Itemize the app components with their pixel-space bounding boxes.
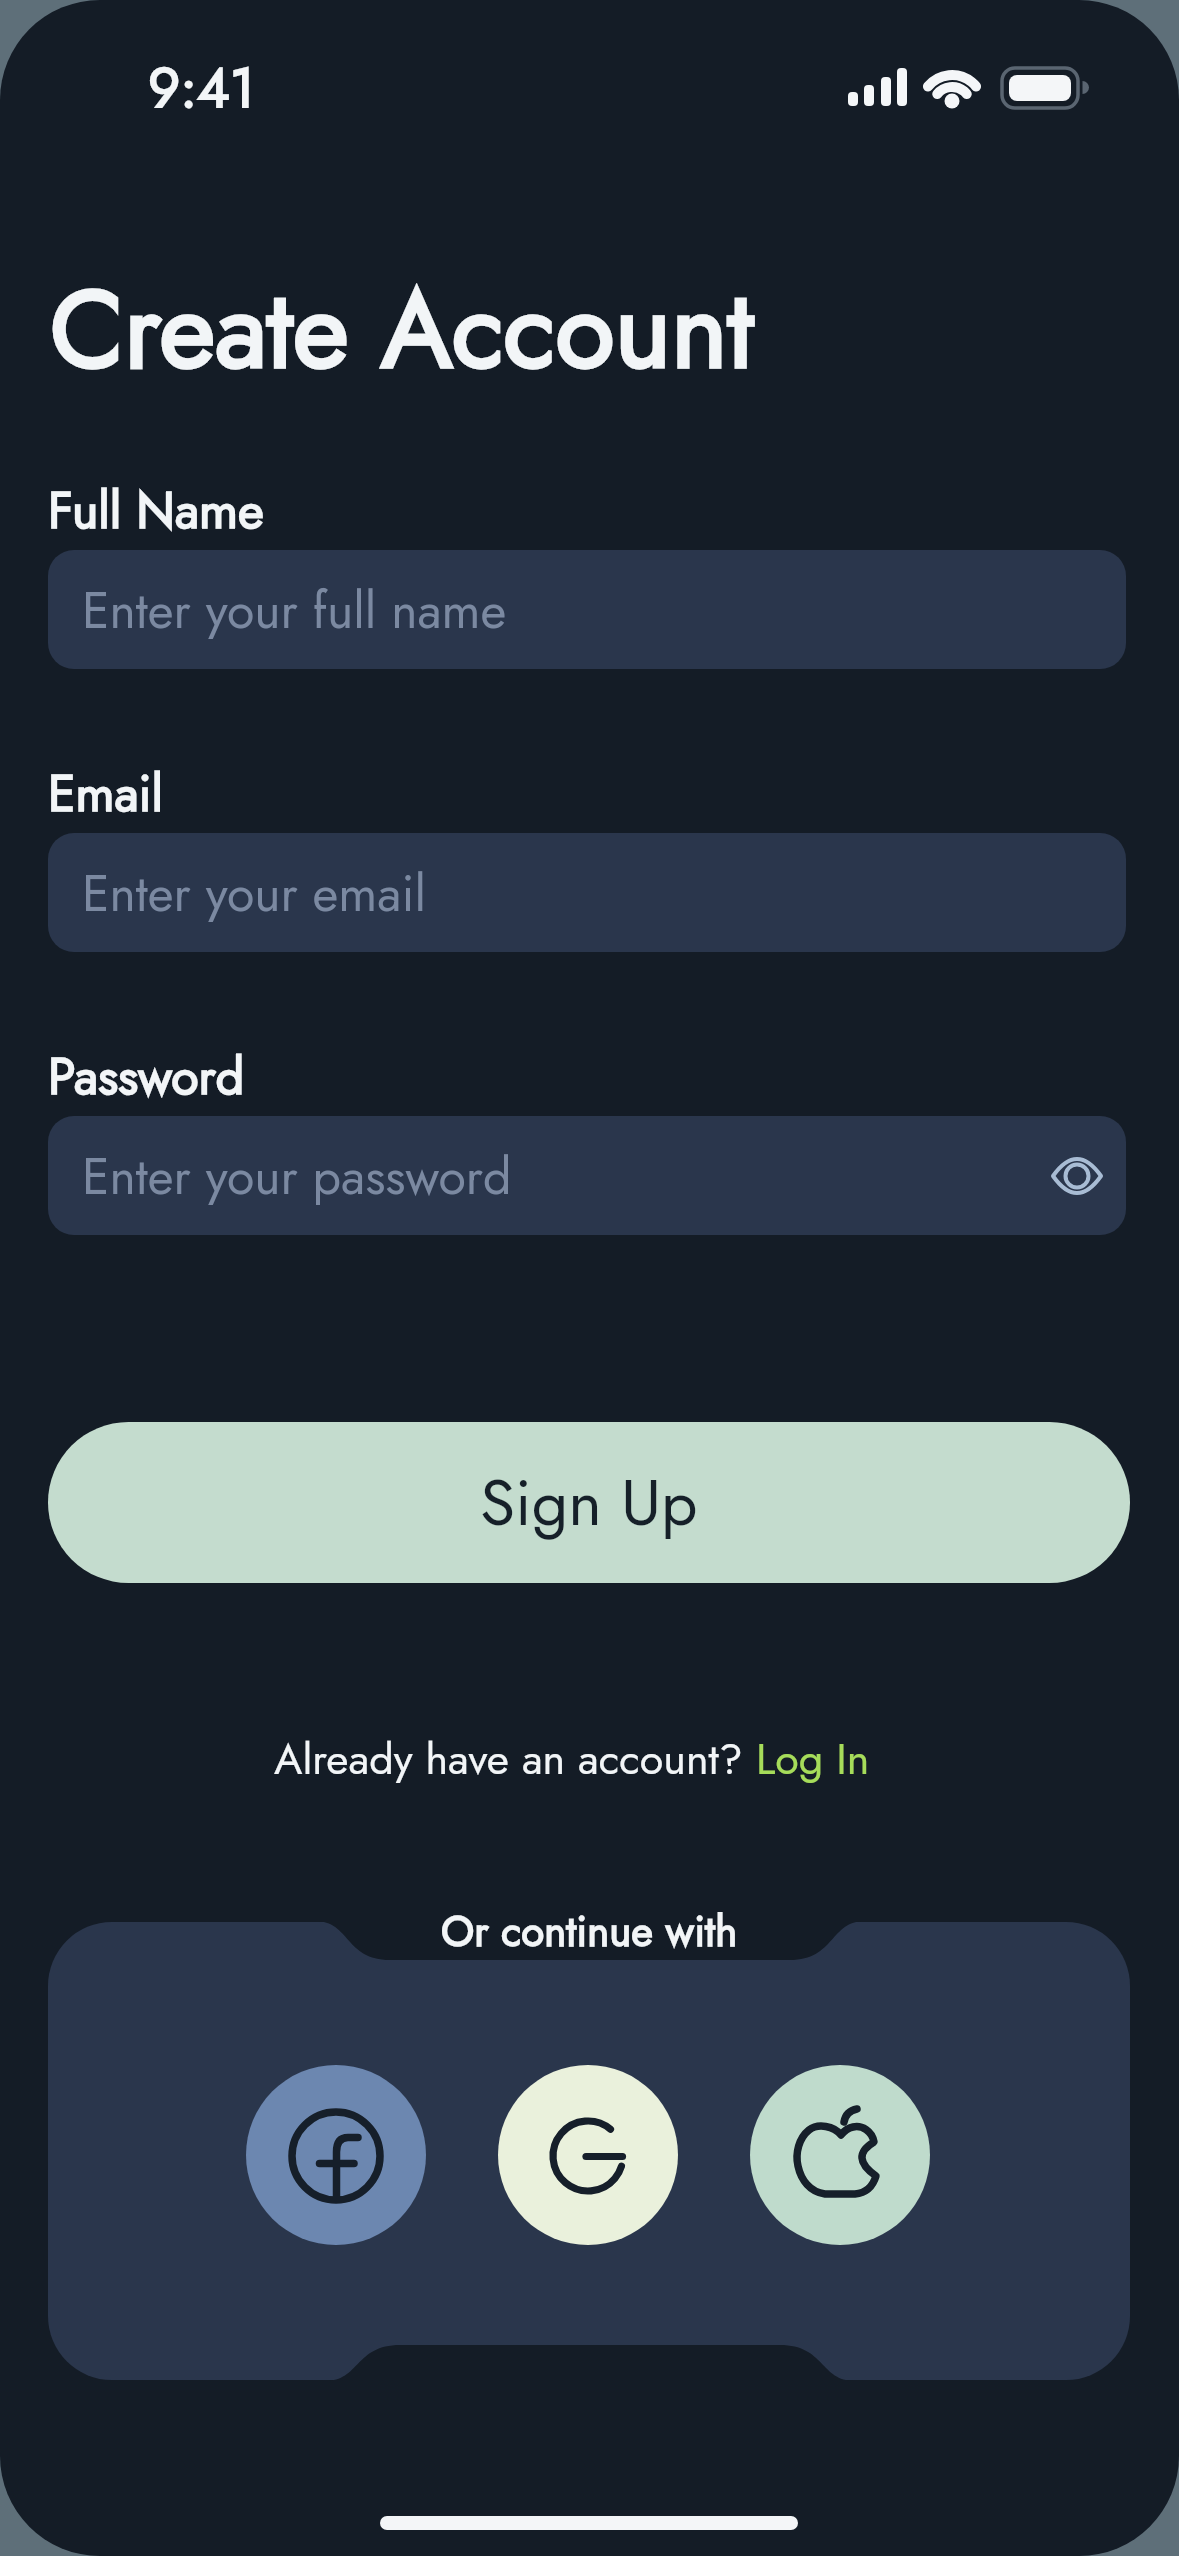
staticText: Sign Up xyxy=(480,1457,698,1549)
staticText: Already have an account? xyxy=(274,1728,756,1790)
staticText: Enter your email xyxy=(82,857,426,929)
button[interactable]: Enter your password xyxy=(48,1116,1126,1235)
staticText: Create Account xyxy=(50,251,754,407)
staticText: 9:41 xyxy=(148,47,255,128)
button[interactable]: Sign Up xyxy=(48,1422,1130,1583)
button[interactable] xyxy=(750,2065,930,2245)
button[interactable]: Enter your email xyxy=(48,833,1126,952)
button[interactable] xyxy=(246,2065,426,2245)
staticText: Email xyxy=(48,757,164,829)
button[interactable]: Enter your full name xyxy=(48,550,1126,669)
staticText: Enter your full name xyxy=(82,574,507,646)
staticText: Enter your password xyxy=(82,1140,512,1212)
staticText: Full Name xyxy=(48,474,264,546)
button[interactable]: Log In xyxy=(756,1728,870,1790)
staticText: Password xyxy=(48,1040,245,1112)
staticText: Or continue with xyxy=(441,1901,738,1962)
button[interactable] xyxy=(498,2065,678,2245)
